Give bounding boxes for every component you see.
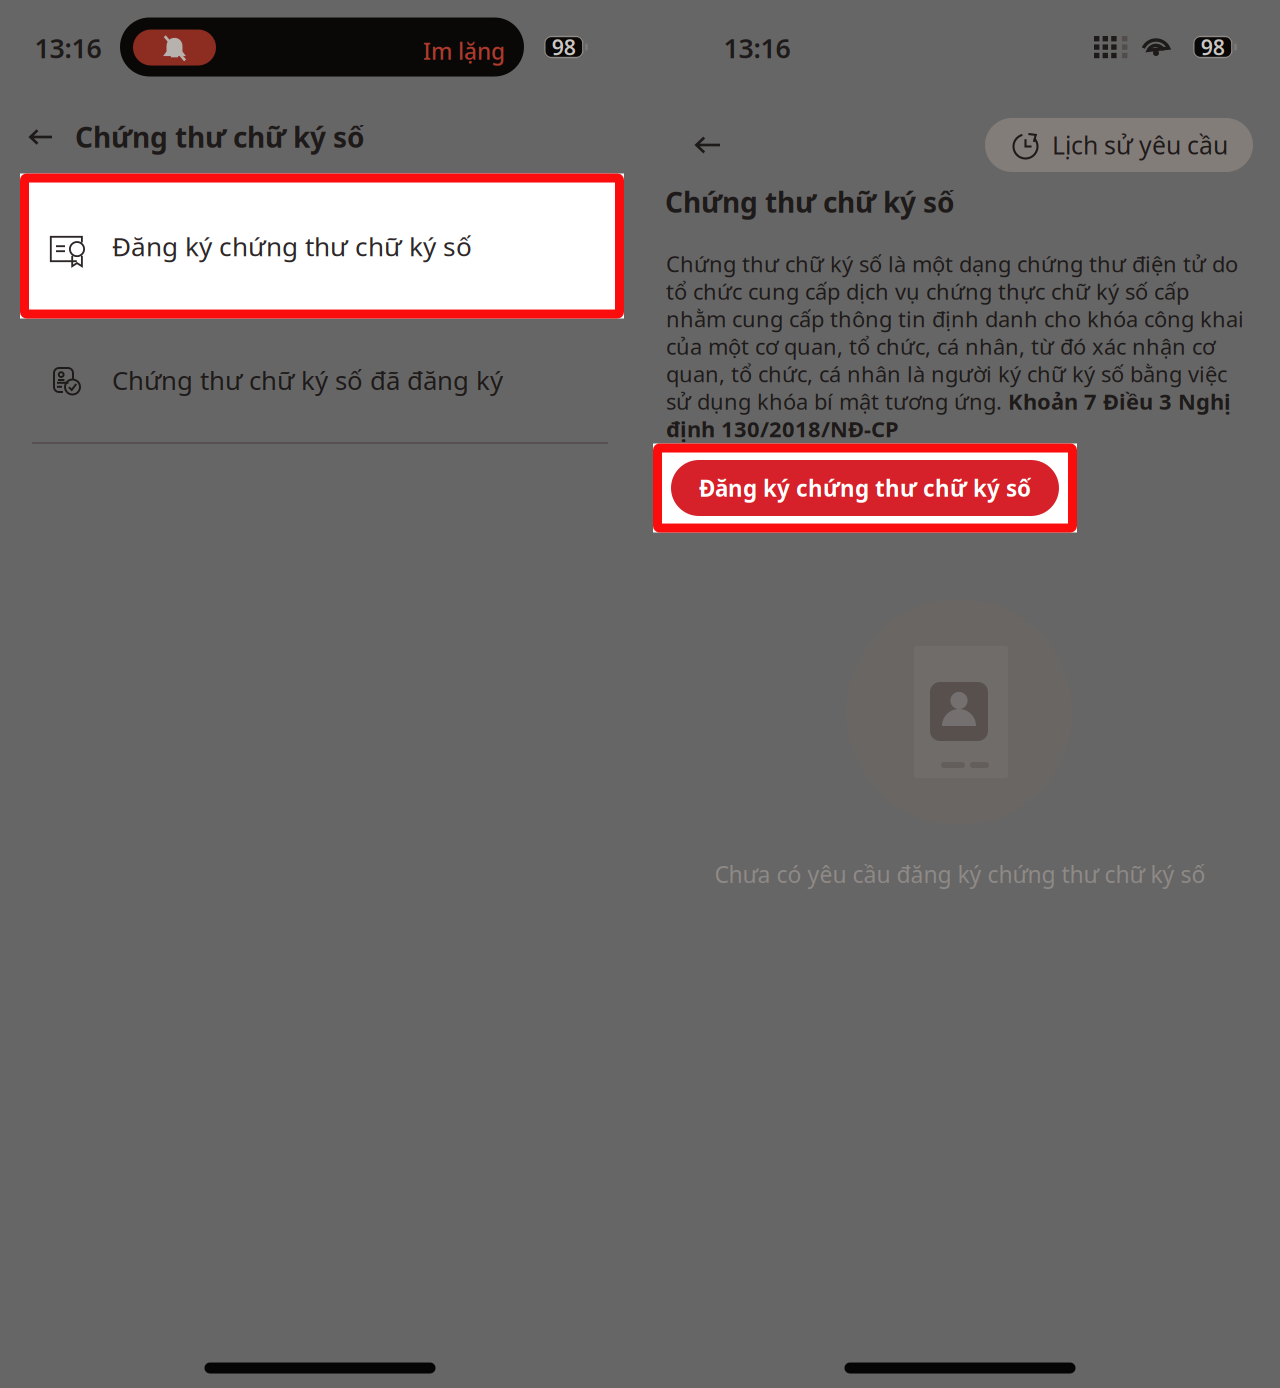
button[interactable]: Quay lại (679, 118, 737, 172)
staticText: Lịch sử yêu cầu (1052, 128, 1228, 162)
staticText: Khoản 7 Điều 3 Nghị (1008, 386, 1231, 416)
staticText: 13:16 (723, 30, 790, 66)
staticText: quan, tổ chức, cá nhân là người ký chữ k… (666, 359, 1227, 389)
staticText: Đăng ký chứng thư chữ ký số (699, 473, 1031, 503)
staticText: nhằm cung cấp thông tin định danh cho kh… (666, 304, 1244, 334)
staticText: Chứng thư chữ ký số (665, 183, 955, 221)
staticText: Chứng thư chữ ký số (75, 118, 365, 156)
staticText: sử dụng khóa bí mật tương ứng. (666, 386, 1008, 416)
staticText: tổ chức cung cấp dịch vụ chứng thực chữ … (666, 276, 1189, 306)
staticText: định 130/2018/NĐ-CP (666, 414, 899, 444)
staticText: của một cơ quan, tổ chức, cá nhân, từ đó… (666, 331, 1215, 361)
button[interactable]: Đăng ký chứng thư chữ ký số (653, 443, 1077, 532)
staticText: Chứng thư chữ ký số là một dạng chứng th… (666, 249, 1238, 279)
staticText: Đăng ký chứng thư chữ ký số (112, 228, 472, 264)
staticText: Chứng thư chữ ký số đã đăng ký (112, 362, 503, 397)
staticText: Chưa có yêu cầu đăng ký chứng thư chữ ký… (714, 858, 1205, 890)
staticText: 98 (552, 32, 576, 62)
button[interactable]: Chứng thư chữ ký số (0, 102, 640, 172)
staticText: 98 (1201, 32, 1225, 62)
button[interactable]: Chứng thư chữ ký số đã đăng ký (0, 320, 640, 440)
button[interactable]: Đăng ký chứng thư chữ ký số (20, 173, 624, 318)
staticText: Im lặng (423, 35, 505, 66)
staticText: 13:16 (34, 30, 101, 66)
button[interactable]: Lịch sử yêu cầu (985, 118, 1253, 172)
